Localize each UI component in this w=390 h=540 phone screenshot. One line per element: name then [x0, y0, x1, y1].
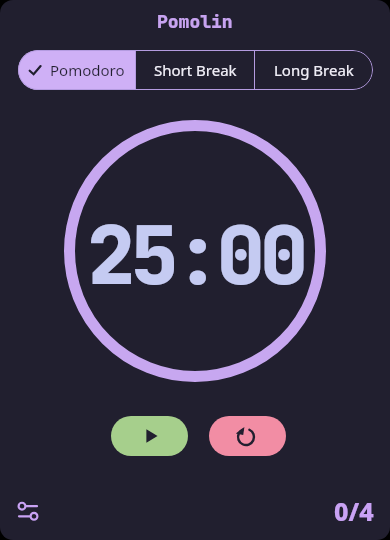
staticText: Pomodoro	[50, 60, 125, 80]
button[interactable]	[209, 416, 286, 456]
button[interactable]: Short Break	[136, 50, 254, 90]
staticText: Pomolin	[157, 10, 233, 34]
button[interactable]: Long Break	[255, 50, 373, 90]
button[interactable]: Pomodoro	[18, 50, 135, 90]
staticText: Long Break	[274, 60, 354, 80]
button[interactable]	[111, 416, 188, 456]
staticText: Short Break	[154, 60, 237, 80]
staticText: 25:00	[87, 201, 304, 308]
button[interactable]	[14, 497, 42, 525]
staticText: 0/4	[334, 494, 374, 528]
